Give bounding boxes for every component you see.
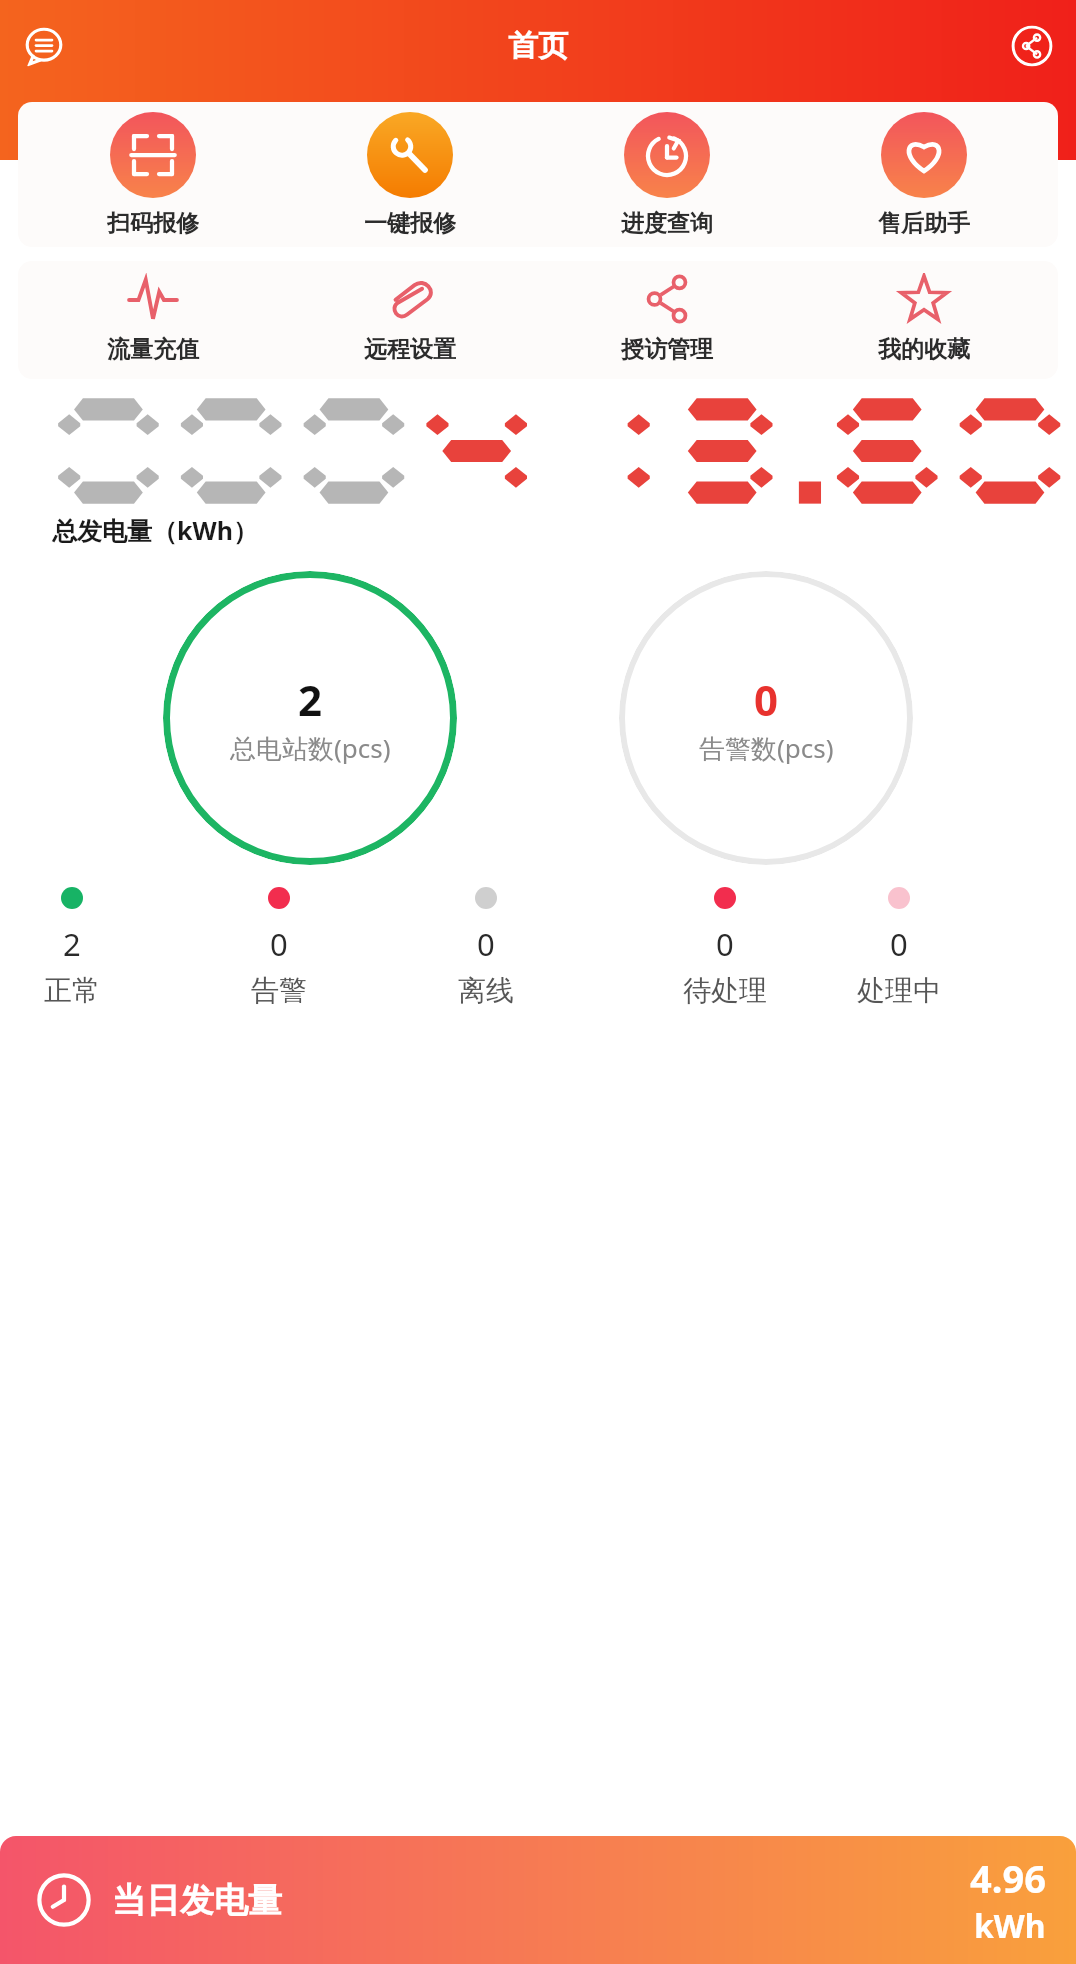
- staticText: 告警: [251, 973, 307, 1008]
- button[interactable]: 0: [853, 887, 945, 1008]
- button[interactable]: 2: [40, 887, 104, 1008]
- staticText: 4.96: [970, 1852, 1046, 1904]
- staticText: 告警数(pcs): [699, 730, 834, 766]
- button[interactable]: 0: [679, 887, 771, 1008]
- button[interactable]: 当日发电量: [0, 1836, 1076, 1964]
- staticText: 0: [270, 923, 288, 965]
- button[interactable]: 我的收藏: [795, 273, 1052, 367]
- button[interactable]: 0: [247, 887, 311, 1008]
- staticText: kWh: [974, 1904, 1046, 1948]
- staticText: 售后助手: [878, 209, 970, 237]
- staticText: 授访管理: [621, 335, 713, 364]
- button[interactable]: Messages: [18, 20, 70, 72]
- staticText: 总电站数(pcs): [230, 730, 391, 766]
- staticText: 流量充值: [107, 335, 199, 364]
- staticText: 0: [477, 923, 495, 965]
- staticText: 当日发电量: [112, 1879, 282, 1922]
- staticText: 待处理: [683, 973, 767, 1008]
- staticText: 远程设置: [364, 335, 456, 364]
- button[interactable]: 0: [619, 571, 913, 865]
- staticText: 一键报修: [364, 209, 456, 237]
- staticText: 总发电量（kWh）: [52, 513, 1076, 547]
- button[interactable]: 2: [163, 571, 457, 865]
- staticText: 我的收藏: [878, 335, 970, 364]
- button[interactable]: 售后助手: [795, 112, 1052, 237]
- staticText: 0: [754, 671, 779, 728]
- button[interactable]: 授访管理: [538, 273, 795, 367]
- staticText: 进度查询: [621, 209, 713, 237]
- staticText: 扫码报修: [107, 209, 199, 237]
- button[interactable]: 流量充值: [24, 273, 281, 367]
- staticText: 首页: [508, 27, 568, 65]
- button[interactable]: 0: [454, 887, 518, 1008]
- staticText: 离线: [458, 973, 514, 1008]
- button[interactable]: 一键报修: [281, 112, 538, 237]
- staticText: 正常: [44, 973, 100, 1008]
- staticText: 0: [716, 923, 734, 965]
- button[interactable]: 扫码报修: [24, 112, 281, 237]
- staticText: 0: [890, 923, 908, 965]
- staticText: 2: [298, 671, 323, 728]
- button[interactable]: 远程设置: [281, 273, 538, 367]
- staticText: 2: [63, 923, 81, 965]
- button[interactable]: 进度查询: [538, 112, 795, 237]
- button[interactable]: Share: [1006, 20, 1058, 72]
- staticText: 处理中: [857, 973, 941, 1008]
